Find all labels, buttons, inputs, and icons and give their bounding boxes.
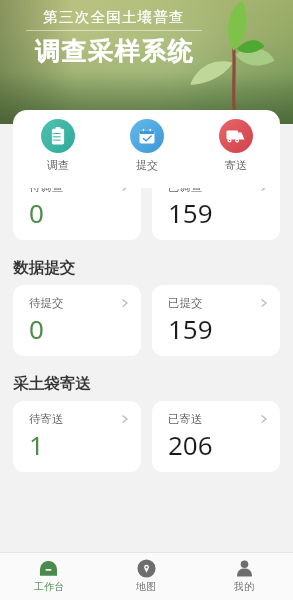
staticText: 数据提交 — [13, 258, 75, 278]
button[interactable]: 工作台 — [0, 553, 97, 600]
button[interactable]: 提交 — [102, 110, 191, 188]
staticText: 159 — [168, 311, 213, 346]
staticText: 待寄送 — [29, 412, 64, 426]
staticText: 待提交 — [29, 296, 64, 310]
staticText: 寄送 — [225, 158, 247, 172]
other: 我的 — [235, 559, 254, 578]
button[interactable]: 调查 — [13, 110, 102, 188]
staticText: 工作台 — [34, 580, 64, 593]
other: 工作台 — [39, 559, 58, 578]
staticText: 提交 — [136, 158, 158, 172]
button[interactable]: 待寄送 — [13, 401, 141, 472]
staticText: 调查采样 — [13, 142, 75, 162]
staticText: 206 — [168, 427, 213, 462]
staticText: 0 — [29, 311, 44, 346]
button[interactable]: 已提交 — [152, 285, 280, 356]
staticText: 159 — [168, 195, 213, 230]
button[interactable]: 已调查 — [152, 169, 280, 240]
staticText: 调查采样系统 — [34, 36, 193, 67]
button[interactable]: 待调查 — [13, 169, 141, 240]
staticText: 我的 — [234, 580, 254, 593]
button[interactable]: 地图 — [97, 553, 195, 600]
staticText: 已调查 — [168, 180, 203, 194]
staticText: 调查 — [47, 158, 69, 172]
staticText: 1 — [29, 427, 44, 462]
button[interactable]: 我的 — [195, 553, 293, 600]
other: 地图 — [137, 559, 156, 578]
button[interactable]: 寄送 — [191, 110, 280, 188]
staticText: 地图 — [136, 580, 156, 593]
button[interactable]: 已寄送 — [152, 401, 280, 472]
staticText: 0 — [29, 195, 44, 230]
staticText: 待调查 — [29, 180, 64, 194]
button[interactable]: 待提交 — [13, 285, 141, 356]
staticText: 已寄送 — [168, 412, 203, 426]
staticText: 采土袋寄送 — [13, 374, 91, 394]
staticText: 第三次全国土壤普查 — [43, 8, 185, 26]
staticText: 已提交 — [168, 296, 203, 310]
